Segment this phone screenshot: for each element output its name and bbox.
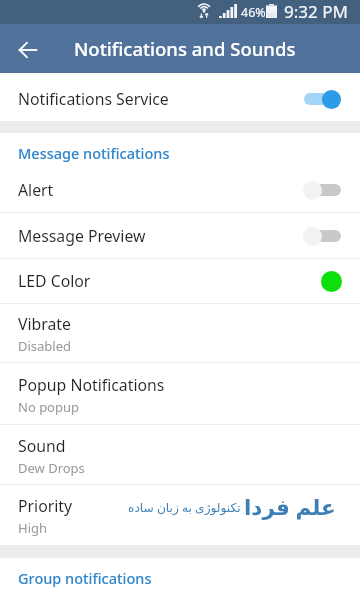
button[interactable]: Back [10, 32, 44, 66]
staticText: Alert [18, 179, 54, 201]
staticText: High [18, 519, 48, 537]
button[interactable]: Priority [0, 485, 360, 545]
button[interactable]: Notifications Service [0, 73, 360, 121]
staticText: Vibrate [18, 313, 71, 335]
staticText: Priority [18, 495, 73, 517]
staticText: LED Color [18, 270, 91, 292]
button[interactable]: Sound [0, 425, 360, 484]
button[interactable]: LED Color [0, 259, 360, 303]
staticText: Message notifications [18, 143, 170, 163]
staticText: Disabled [18, 337, 72, 355]
other: Off [303, 225, 341, 247]
other: On [303, 88, 341, 110]
staticText: Sound [18, 435, 66, 457]
staticText: Popup Notifications [18, 374, 165, 396]
button[interactable]: Popup Notifications [0, 363, 360, 424]
staticText: 46% [241, 4, 266, 21]
other: LED colour swatch [321, 271, 342, 292]
other: Signal strength [219, 4, 237, 18]
staticText: No popup [18, 398, 80, 416]
staticText: Notifications and Sounds [74, 36, 296, 61]
staticText: 9:32 PM [284, 0, 348, 23]
button[interactable]: Message Preview [0, 213, 360, 258]
staticText: Group notifications [18, 568, 152, 588]
button[interactable]: Vibrate [0, 304, 360, 362]
other: Battery [266, 4, 277, 18]
staticText: Message Preview [18, 225, 146, 247]
button[interactable]: Alert [0, 163, 360, 212]
other: Wi-Fi [196, 3, 212, 18]
other: Off [303, 179, 341, 201]
staticText: علم فردا [244, 492, 336, 521]
staticText: تکنولوژی به زبان ساده [128, 499, 241, 516]
staticText: Dew Drops [18, 459, 85, 477]
staticText: Notifications Service [18, 88, 169, 110]
